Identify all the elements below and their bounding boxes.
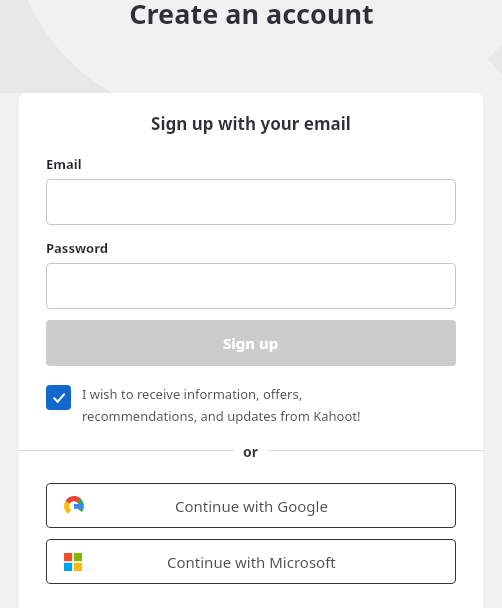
staticText: Continue with Google	[175, 496, 328, 516]
button[interactable]	[46, 263, 456, 309]
staticText: Password	[46, 239, 108, 257]
button[interactable]	[46, 179, 456, 225]
button[interactable]: Sign up	[46, 320, 456, 366]
button[interactable]: I wish to receive information, offers, r…	[46, 385, 456, 425]
staticText: Create an account	[129, 0, 374, 32]
button[interactable]: Continue with Microsoft	[46, 539, 456, 584]
staticText: Continue with Microsoft	[167, 552, 336, 572]
staticText: I wish to receive information, offers, r…	[82, 385, 361, 425]
button[interactable]: Continue with Google	[46, 483, 456, 528]
staticText: Sign up with your email	[19, 112, 483, 135]
staticText: Email	[46, 155, 82, 173]
staticText: or	[243, 442, 259, 458]
staticText: Sign up	[223, 333, 279, 353]
